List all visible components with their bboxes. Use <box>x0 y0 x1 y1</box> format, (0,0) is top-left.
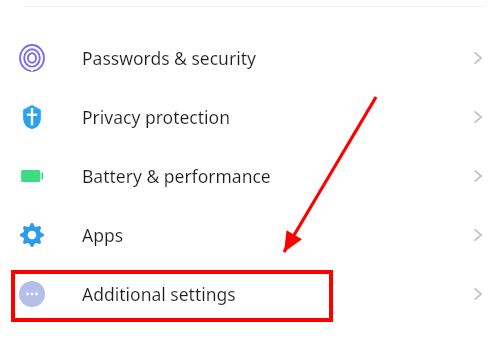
button[interactable]: Passwords & security <box>0 29 500 87</box>
button[interactable]: Battery & performance <box>0 147 500 205</box>
staticText: Additional settings <box>82 282 236 306</box>
staticText: Battery & performance <box>82 164 271 188</box>
staticText: Apps <box>82 223 124 247</box>
button[interactable]: Additional settings <box>0 265 500 323</box>
button[interactable]: Apps <box>0 206 500 264</box>
staticText: Passwords & security <box>82 46 256 70</box>
staticText: Privacy protection <box>82 105 230 129</box>
button[interactable]: Privacy protection <box>0 88 500 146</box>
